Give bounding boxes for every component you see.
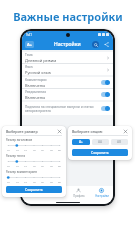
staticText: Поиск (52, 194, 60, 198)
staticText: 12 (7, 180, 10, 183)
staticText: Размер комментариев (6, 170, 37, 174)
button[interactable]: Язык (22, 64, 113, 75)
staticText: Язык (25, 65, 33, 69)
button[interactable]: AA (92, 139, 109, 145)
staticText: Настройки (54, 41, 81, 48)
staticText: Выберите опцию (72, 129, 123, 134)
staticText: 12 (7, 164, 10, 167)
staticText: 15 (33, 164, 36, 167)
staticText: 18 (50, 164, 53, 167)
button[interactable]: Лента (22, 186, 44, 200)
button[interactable]: Закрыть (123, 129, 128, 134)
staticText: Русский язык (25, 70, 51, 75)
button[interactable]: A+ (72, 139, 90, 145)
staticText: 18 (50, 148, 53, 151)
staticText: Профиль (73, 194, 85, 198)
button[interactable]: Настройки (90, 186, 113, 200)
button[interactable] (101, 106, 110, 111)
staticText: Подписка на специальные выпуски и статьи… (25, 105, 99, 113)
button[interactable]: Тема (22, 52, 113, 63)
button[interactable]: Поиск (92, 41, 99, 48)
button[interactable]: Сохранить (72, 149, 128, 156)
staticText: 13 (16, 180, 19, 183)
staticText: 16 (41, 180, 44, 183)
button[interactable]: A+ (25, 41, 34, 48)
staticText: Сохранить (25, 187, 43, 192)
staticText: 20 (58, 180, 61, 183)
staticText: Размер текста (6, 154, 26, 158)
staticText: 20 (58, 148, 61, 151)
staticText: Важные настройки (13, 9, 123, 24)
staticText: Лента (29, 194, 37, 198)
staticText: 16 (41, 164, 44, 167)
staticText: AA (98, 140, 103, 144)
button[interactable]: Уведомления (22, 89, 113, 100)
staticText: 16 (41, 148, 44, 151)
staticText: A+ (27, 42, 33, 47)
staticText: Комментарии (25, 78, 47, 82)
staticText: 14 (24, 164, 27, 167)
button[interactable]: Закрыть (57, 129, 62, 134)
button[interactable] (101, 80, 110, 85)
staticText: 15 (33, 180, 36, 183)
staticText: Уведомления (25, 90, 47, 94)
staticText: A+ (79, 140, 83, 144)
button[interactable]: Поиск (44, 186, 67, 200)
button[interactable]: Комментарии (22, 77, 113, 88)
staticText: 12 (7, 148, 10, 151)
button[interactable]: Сохранить (6, 186, 62, 193)
staticText: Тема (25, 53, 33, 57)
staticText: AB (117, 140, 122, 144)
staticText: Размер заголовков (6, 138, 32, 142)
staticText: 13 (16, 148, 19, 151)
staticText: Настройки (95, 194, 109, 198)
button[interactable] (101, 92, 110, 97)
staticText: 15 (33, 148, 36, 151)
staticText: 13 (16, 164, 19, 167)
staticText: Включены (25, 95, 46, 100)
button[interactable]: Профиль (67, 186, 90, 200)
staticText: 9:41 (26, 33, 32, 37)
button[interactable]: Поделиться (103, 41, 110, 48)
staticText: Сохранить (91, 150, 109, 155)
staticText: 20 (58, 164, 61, 167)
staticText: Дневной режим (25, 58, 57, 63)
button[interactable]: AB (111, 139, 128, 145)
staticText: 18 (50, 180, 53, 183)
staticText: 14 (24, 148, 27, 151)
staticText: 14 (24, 180, 27, 183)
staticText: Включены (25, 83, 46, 88)
button[interactable]: Подписка на специальные выпуски и статьи… (22, 102, 113, 115)
staticText: Выберите размер (6, 129, 57, 134)
